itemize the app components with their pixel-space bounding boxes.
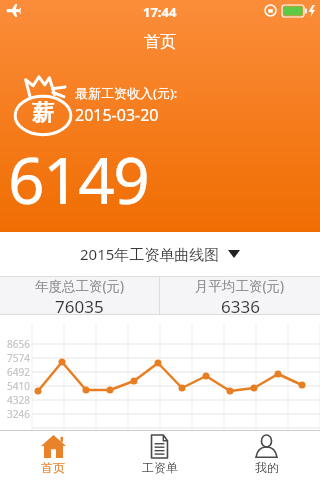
staticText: 7574 <box>7 351 30 365</box>
staticText: 3246 <box>7 407 30 421</box>
staticText: 我的 <box>255 460 279 475</box>
staticText: 5410 <box>7 379 30 393</box>
staticText: 首页 <box>144 32 176 52</box>
button[interactable]: 工资单 <box>106 431 213 480</box>
staticText: 最新工资收入(元): <box>75 84 178 102</box>
staticText: 2015年工资单曲线图 <box>80 244 220 264</box>
staticText: 首页 <box>41 460 65 475</box>
staticText: 76035 <box>55 295 104 314</box>
button[interactable]: 月平均工资(元) <box>160 277 320 314</box>
button[interactable]: 首页 <box>0 431 106 480</box>
staticText: 月平均工资(元) <box>195 277 285 295</box>
staticText: 薪 <box>32 99 54 127</box>
staticText: 8656 <box>7 337 30 351</box>
staticText: 2015-03-20 <box>75 104 159 126</box>
staticText: 6336 <box>221 295 260 314</box>
button[interactable]: 2015年工资单曲线图 <box>0 232 320 276</box>
staticText: 年度总工资(元) <box>35 277 125 295</box>
staticText: 工资单 <box>142 460 178 475</box>
button[interactable]: 年度总工资(元) <box>0 277 159 314</box>
staticText: 17:44 <box>143 3 177 21</box>
staticText: 6149 <box>8 136 149 223</box>
staticText: 6492 <box>7 365 30 379</box>
button[interactable]: 我的 <box>213 431 320 480</box>
staticText: 4328 <box>7 393 30 407</box>
